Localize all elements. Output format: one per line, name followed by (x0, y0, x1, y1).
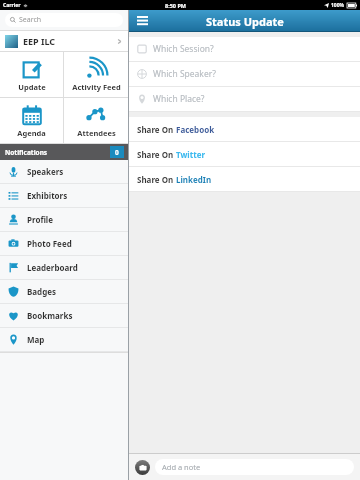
staticText: Exhibitors (27, 190, 68, 201)
button[interactable]: Add a note (155, 459, 354, 475)
button[interactable]: Agenda (0, 98, 63, 143)
button[interactable]: Speakers (0, 160, 128, 183)
button[interactable]: Which Session? (129, 37, 360, 61)
staticText: Search (19, 15, 42, 25)
staticText: Which Place? (153, 93, 205, 105)
staticText: Notifications (5, 148, 48, 157)
staticText: Agenda (17, 128, 46, 138)
staticText: LinkedIn (176, 174, 212, 185)
staticText: Activity Feed (72, 82, 121, 92)
staticText: Share On (137, 149, 176, 160)
button[interactable]: Which Speaker? (129, 62, 360, 86)
staticText: Bookmarks (27, 310, 73, 321)
button[interactable]: Badges (0, 280, 128, 303)
button[interactable]: Share On (129, 142, 360, 166)
staticText: Carrier (3, 2, 21, 9)
staticText: EEP ILC (23, 35, 56, 47)
staticText: Which Speaker? (153, 68, 216, 80)
button[interactable]: Photo Feed (0, 232, 128, 255)
staticText: Photo Feed (27, 238, 72, 249)
staticText: Which Session? (153, 43, 214, 55)
staticText: Speakers (27, 166, 64, 177)
button[interactable]: Add photo (135, 460, 150, 475)
staticText: Facebook (176, 124, 215, 135)
button[interactable]: Profile (0, 208, 128, 231)
staticText: Status Update (206, 14, 284, 29)
button[interactable]: Share On (129, 117, 360, 141)
staticText: 8:50 PM (165, 2, 187, 9)
staticText: Update (18, 82, 46, 92)
button[interactable]: EEP ILC (0, 31, 128, 51)
staticText: Share On (137, 124, 176, 135)
staticText: Twitter (176, 149, 205, 160)
staticText: Add a note (162, 462, 201, 472)
staticText: 0 (115, 148, 119, 157)
button[interactable]: Update (0, 52, 63, 97)
button[interactable]: Attendees (64, 98, 128, 143)
button[interactable]: Leaderboard (0, 256, 128, 279)
staticText: Badges (27, 286, 57, 297)
button[interactable]: Menu (135, 14, 149, 28)
button[interactable]: Search (5, 13, 123, 27)
button[interactable]: Bookmarks (0, 304, 128, 327)
staticText: Attendees (77, 128, 116, 138)
button[interactable]: Map (0, 328, 128, 351)
staticText: Share On (137, 174, 176, 185)
staticText: 100% (331, 2, 345, 9)
staticText: Map (27, 334, 45, 345)
button[interactable]: Exhibitors (0, 184, 128, 207)
button[interactable]: Share On (129, 167, 360, 191)
button[interactable]: Activity Feed (64, 52, 128, 97)
staticText: Profile (27, 214, 54, 225)
button[interactable]: Notifications (0, 144, 128, 160)
button[interactable]: Which Place? (129, 87, 360, 111)
staticText: Leaderboard (27, 262, 78, 273)
